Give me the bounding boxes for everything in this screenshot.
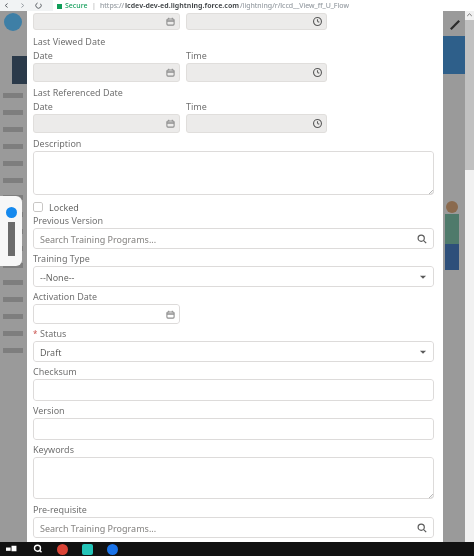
button[interactable]	[33, 151, 434, 195]
button[interactable]	[33, 379, 434, 401]
staticText: Status	[40, 327, 67, 339]
button[interactable]	[33, 304, 180, 324]
other: Start	[6, 544, 17, 555]
button[interactable]: Search Training Programs...	[33, 517, 434, 538]
button[interactable]	[33, 457, 434, 499]
button[interactable]	[186, 114, 327, 133]
staticText: Last Viewed Date	[33, 35, 106, 47]
staticText: Last Referenced Date	[33, 86, 123, 98]
other: App	[107, 544, 118, 555]
staticText: Search Training Programs...	[40, 233, 417, 245]
button[interactable]	[186, 63, 327, 82]
staticText: Time	[186, 100, 207, 112]
button[interactable]	[33, 13, 180, 30]
staticText: Draft	[40, 346, 419, 358]
staticText: Version	[33, 404, 65, 416]
staticText: Checksum	[33, 365, 77, 377]
staticText: *	[33, 328, 38, 339]
staticText: Locked	[49, 201, 79, 213]
staticText: Pre-requisite	[33, 503, 87, 515]
other: App	[82, 544, 93, 555]
staticText: /lightning/r/lccd__View_ff_U_Flow	[240, 1, 349, 11]
button[interactable]: Draft	[33, 341, 434, 362]
button[interactable]	[33, 418, 434, 440]
staticText: Secure	[65, 1, 88, 11]
staticText: Description	[33, 137, 82, 149]
staticText: Building Location	[33, 541, 107, 553]
other: Search	[33, 544, 43, 554]
staticText: --None--	[40, 271, 419, 283]
staticText: |	[92, 1, 96, 11]
button[interactable]: Locked	[33, 199, 79, 214]
staticText: Date	[33, 49, 53, 61]
button[interactable]	[33, 63, 180, 82]
staticText: Activation Date	[33, 290, 98, 302]
staticText: https://	[100, 1, 125, 11]
staticText: Time	[186, 49, 207, 61]
staticText: Previous Version	[33, 214, 104, 226]
button[interactable]	[186, 13, 327, 30]
staticText: Date	[33, 100, 53, 112]
other: Chrome	[57, 544, 68, 555]
staticText: Keywords	[33, 443, 74, 455]
button[interactable]: Search Training Programs...	[33, 228, 434, 249]
button[interactable]: --None--	[33, 266, 434, 287]
staticText: Search Training Programs...	[40, 522, 417, 534]
button[interactable]	[33, 114, 180, 133]
staticText: lcdev-dev-ed.lightning.force.com	[125, 1, 240, 11]
staticText: Training Type	[33, 252, 90, 264]
